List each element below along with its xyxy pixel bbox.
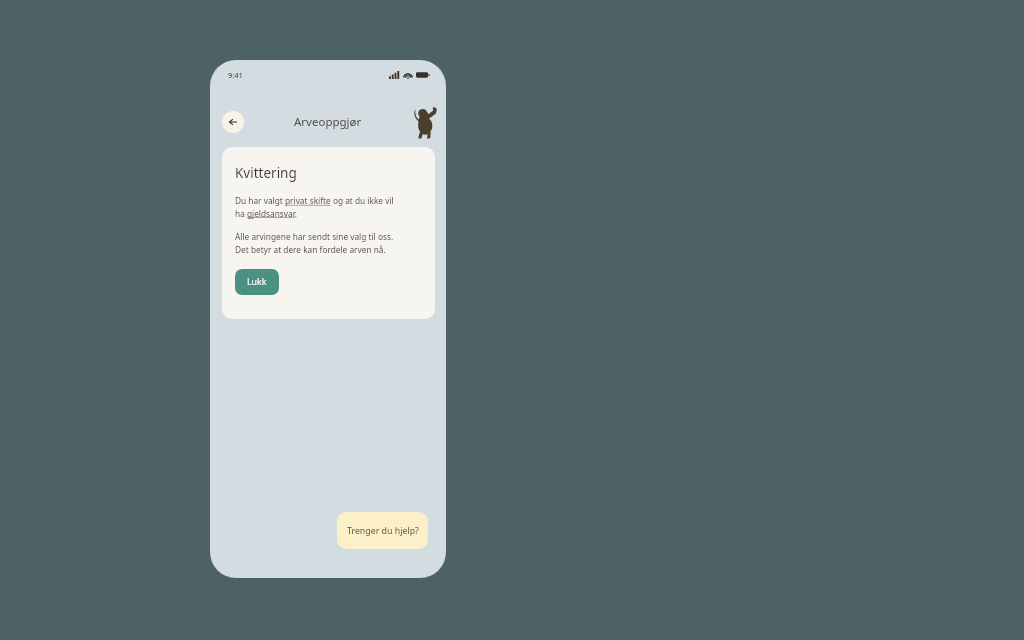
button[interactable]: Lukk <box>235 269 279 295</box>
staticText: Du har valgt privat skifte og at du ikke… <box>235 195 394 219</box>
staticText: Alle arvingene har sendt sine valg til o… <box>235 231 394 255</box>
staticText: Kvittering <box>235 164 297 182</box>
staticText: Lukk <box>247 276 267 288</box>
staticText: 9:41 <box>228 70 243 80</box>
staticText: Arveoppgjør <box>294 114 362 130</box>
staticText: Trenger du hjelp? <box>347 525 419 537</box>
button[interactable]: Trenger du hjelp? <box>337 512 428 549</box>
button[interactable]: Back <box>222 111 244 133</box>
